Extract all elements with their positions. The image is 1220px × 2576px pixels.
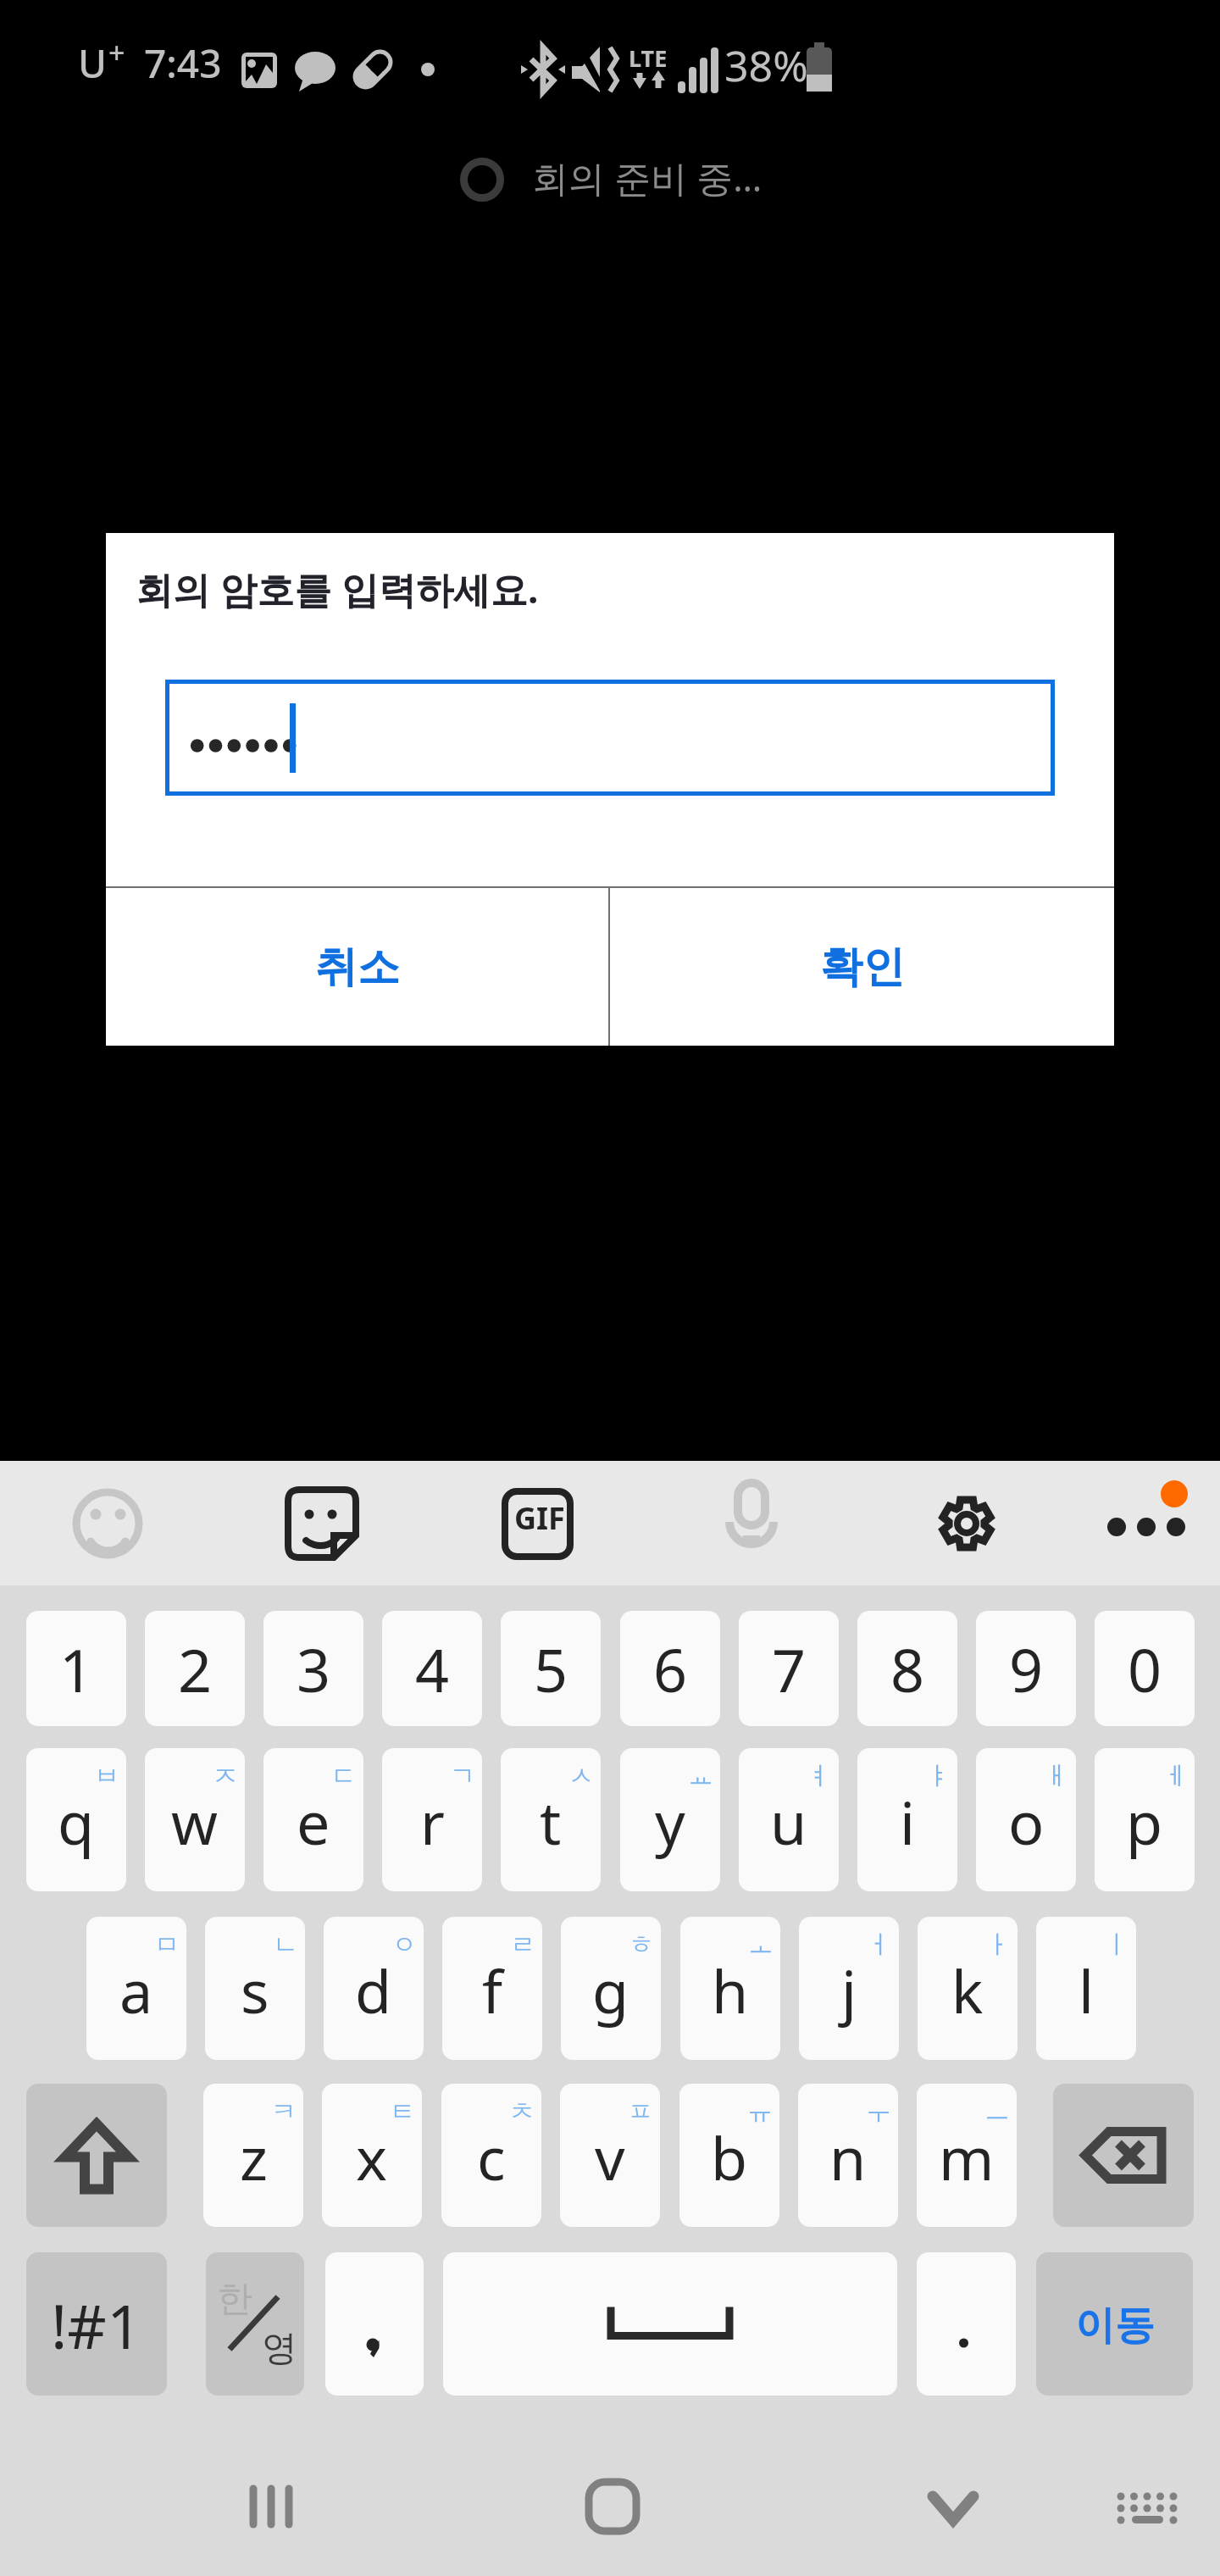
button[interactable]: h <box>680 1917 780 2060</box>
button[interactable]: b <box>679 2084 779 2227</box>
staticText: ㅏ <box>985 1929 1011 1961</box>
staticText: ㅐ <box>1044 1760 1069 1792</box>
button[interactable]: y <box>620 1748 720 1891</box>
button[interactable]: 확인 <box>610 888 1114 1046</box>
button[interactable]: f <box>442 1917 542 2060</box>
staticText: i <box>900 1781 916 1862</box>
staticText: ㅕ <box>807 1760 832 1792</box>
button[interactable]: backspace <box>1053 2084 1194 2227</box>
button[interactable]: n <box>798 2084 898 2227</box>
button[interactable]: 1 <box>26 1611 126 1726</box>
button[interactable]: hanyeong <box>206 2252 304 2396</box>
button[interactable]: a <box>86 1917 186 2060</box>
staticText: u <box>770 1781 807 1862</box>
button[interactable]: o <box>976 1748 1076 1891</box>
staticText: GIF <box>514 1497 565 1539</box>
staticText: d <box>355 1950 392 2030</box>
button[interactable]: 9 <box>976 1611 1076 1726</box>
staticText: f <box>482 1950 503 2030</box>
button[interactable]: u <box>739 1748 839 1891</box>
button[interactable]: c <box>441 2084 541 2227</box>
staticText: ㄹ <box>510 1929 535 1961</box>
button[interactable]: r <box>382 1748 482 1891</box>
button[interactable]: 취소 <box>106 888 608 1046</box>
button[interactable]: d <box>324 1917 424 2060</box>
button[interactable]: i <box>857 1748 957 1891</box>
button[interactable]: j <box>799 1917 899 2060</box>
staticText: 38% <box>724 36 808 94</box>
staticText: ㅌ <box>390 2096 415 2128</box>
staticText: 2 <box>178 1629 213 1709</box>
staticText: ㅔ <box>1162 1760 1188 1792</box>
staticText: 회의 암호를 입력하세요. <box>136 563 539 614</box>
button[interactable]: w <box>145 1748 245 1891</box>
staticText: !#1 <box>51 2284 142 2367</box>
staticText: h <box>712 1950 749 2030</box>
button[interactable]: 5 <box>501 1611 601 1726</box>
button[interactable]: 0 <box>1095 1611 1195 1726</box>
staticText: 회의 준비 중… <box>532 153 762 203</box>
button[interactable]: comma <box>325 2252 424 2396</box>
button[interactable]: 2 <box>145 1611 245 1726</box>
button[interactable]: t <box>501 1748 601 1891</box>
staticText: U <box>78 36 107 90</box>
button[interactable]: space <box>443 2252 897 2396</box>
button[interactable]: s <box>205 1917 305 2060</box>
staticText: 취소 <box>315 941 400 994</box>
staticText: ㅡ <box>984 2096 1010 2128</box>
button[interactable]: q <box>26 1748 126 1891</box>
button[interactable]: 7 <box>739 1611 839 1726</box>
button[interactable]: m <box>917 2084 1017 2227</box>
button[interactable]: shift <box>26 2084 167 2227</box>
staticText: k <box>951 1950 984 2030</box>
button[interactable]: k <box>918 1917 1018 2060</box>
staticText: ㄴ <box>273 1929 298 1961</box>
staticText: e <box>297 1781 330 1862</box>
staticText: 영 <box>262 2326 297 2371</box>
staticText: LTE <box>629 42 668 74</box>
button[interactable]: 8 <box>857 1611 957 1726</box>
button[interactable]: l <box>1036 1917 1136 2060</box>
button[interactable]: 3 <box>263 1611 363 1726</box>
staticText: p <box>1126 1781 1163 1862</box>
staticText: c <box>477 2117 506 2197</box>
staticText: g <box>592 1950 629 2030</box>
staticText: 7 <box>772 1629 807 1709</box>
button[interactable]: !#1 <box>26 2252 167 2396</box>
staticText: j <box>841 1950 857 2030</box>
staticText: 4 <box>415 1629 450 1709</box>
staticText: ㅗ <box>748 1929 774 1961</box>
staticText: ㄷ <box>331 1760 357 1792</box>
button[interactable]: p <box>1095 1748 1195 1891</box>
staticText: m <box>939 2117 995 2197</box>
button[interactable]: v <box>560 2084 660 2227</box>
staticText: 1 <box>59 1629 94 1709</box>
staticText: ㅊ <box>509 2096 535 2128</box>
button[interactable]: g <box>561 1917 661 2060</box>
staticText: ㄱ <box>450 1760 475 1792</box>
staticText: + <box>108 33 125 72</box>
staticText: q <box>58 1781 95 1862</box>
button[interactable]: 4 <box>382 1611 482 1726</box>
button[interactable]: 이동 <box>1036 2252 1193 2396</box>
button[interactable]: x <box>322 2084 422 2227</box>
staticText: 한 <box>217 2277 252 2322</box>
button[interactable]: period <box>917 2252 1016 2396</box>
button[interactable]: 6 <box>620 1611 720 1726</box>
button[interactable]: z <box>203 2084 303 2227</box>
staticText: ㅑ <box>925 1760 951 1792</box>
staticText: o <box>1008 1781 1045 1862</box>
staticText: ㅍ <box>628 2096 653 2128</box>
staticText: 확인 <box>820 941 905 994</box>
staticText: s <box>241 1950 269 2030</box>
staticText: ㅓ <box>867 1929 892 1961</box>
staticText: 9 <box>1009 1629 1044 1709</box>
staticText: r <box>420 1781 445 1862</box>
staticText: ㅜ <box>866 2096 891 2128</box>
staticText: z <box>240 2117 268 2197</box>
staticText: n <box>829 2117 867 2197</box>
staticText: ㅠ <box>747 2096 773 2128</box>
staticText: y <box>655 1781 685 1862</box>
button[interactable]: e <box>263 1748 363 1891</box>
